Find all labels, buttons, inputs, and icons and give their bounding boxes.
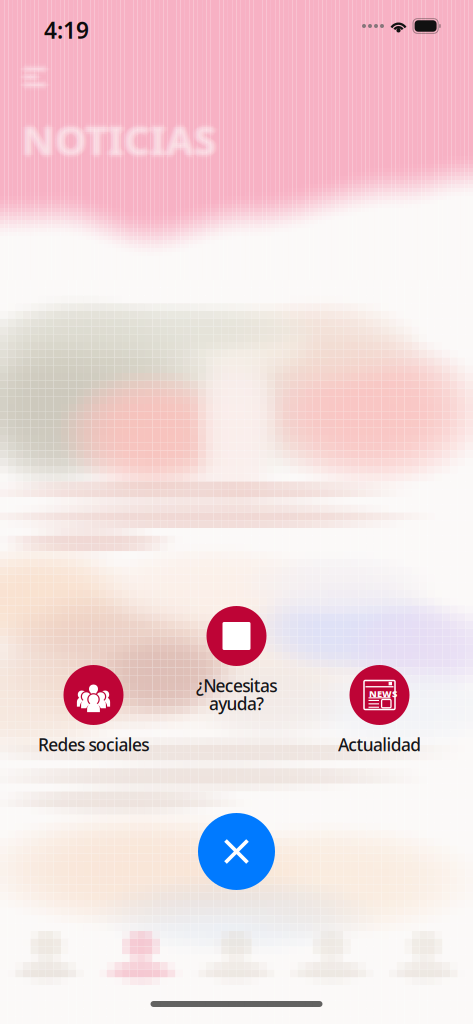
staticText: NOTICIAS [26, 113, 220, 166]
staticText: NOTICIAS [22, 109, 216, 162]
button[interactable]: ¿Necesitas [151, 606, 321, 715]
button[interactable]: NEWS [294, 665, 464, 756]
staticText: NOTICIAS [22, 117, 216, 170]
staticText: NOTICIAS [24, 111, 218, 164]
staticText: Redes sociales [38, 733, 149, 756]
staticText: NOTICIAS [20, 113, 214, 166]
staticText: ayuda? [209, 692, 264, 715]
staticText: NOTICIAS [20, 115, 214, 168]
button[interactable]: Menu [24, 62, 64, 96]
button[interactable]: Close menu [198, 813, 275, 890]
staticText: NOTICIAS [20, 111, 214, 164]
staticText: 4:19 [44, 15, 89, 45]
staticText: Actualidad [338, 733, 421, 756]
staticText: NOTICIAS [18, 113, 212, 166]
button[interactable]: Redes sociales [8, 665, 178, 756]
staticText: NEWS [369, 687, 397, 700]
staticText: NOTICIAS [22, 115, 216, 168]
staticText: ¿Necesitas [196, 674, 277, 697]
staticText: NOTICIAS [24, 115, 218, 168]
staticText: NOTICIAS [22, 113, 216, 166]
staticText: NOTICIAS [24, 113, 218, 166]
staticText: NOTICIAS [22, 111, 216, 164]
